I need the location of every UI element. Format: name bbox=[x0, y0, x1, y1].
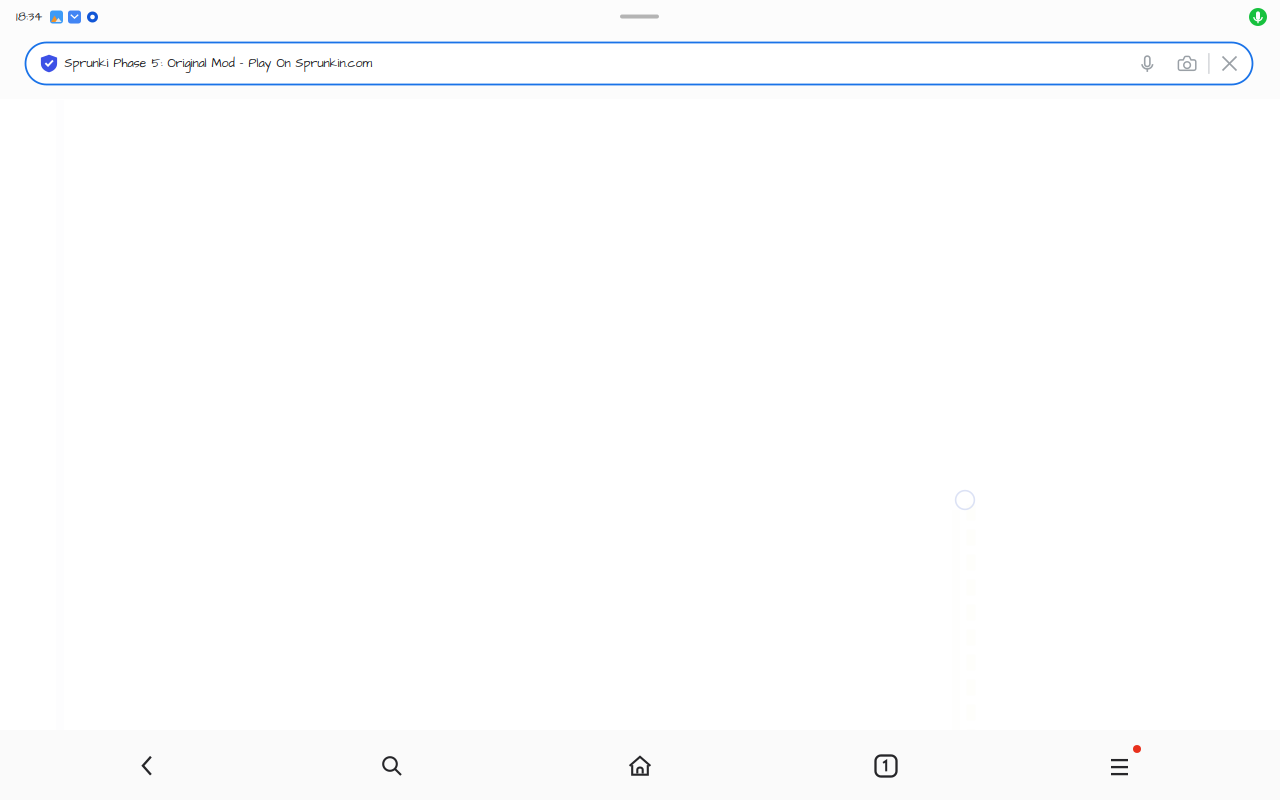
button[interactable]: Sprunki Phase 5: Original Mod - Play On … bbox=[25, 42, 1252, 84]
button[interactable]: Search bbox=[360, 738, 424, 794]
staticText: Sprunki Phase 5: Original Mod - Play On … bbox=[64, 55, 372, 72]
button[interactable]: Menu bbox=[1096, 738, 1160, 794]
button[interactable]: Back bbox=[115, 738, 179, 794]
button[interactable]: Home bbox=[608, 738, 672, 794]
button[interactable]: Tabs bbox=[854, 738, 918, 794]
staticText: 18:34 bbox=[16, 9, 42, 25]
